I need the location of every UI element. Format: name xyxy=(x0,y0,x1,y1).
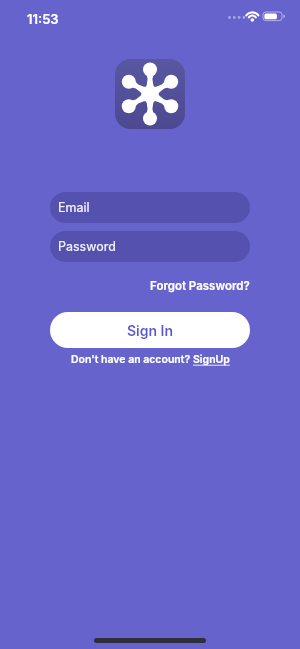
staticText: 11:53 xyxy=(27,11,59,27)
staticText: Password xyxy=(58,239,116,254)
button[interactable]: Sign In xyxy=(50,312,250,348)
button[interactable]: Password xyxy=(50,231,250,262)
button[interactable]: Forgot Password? xyxy=(150,279,250,293)
staticText: Don't have an account? xyxy=(71,353,193,366)
button[interactable]: Email xyxy=(50,192,250,223)
button[interactable]: Don't have an account? xyxy=(71,353,230,366)
staticText: Sign In xyxy=(127,322,174,339)
staticText: SignUp xyxy=(193,353,230,366)
staticText: Email xyxy=(58,200,90,215)
